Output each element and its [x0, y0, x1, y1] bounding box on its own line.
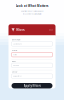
- staticText: Apply filters: [23, 84, 40, 87]
- staticText: Date range: [11, 39, 20, 41]
- staticText: Newest first: [13, 75, 21, 77]
- staticText: Status: [11, 50, 17, 51]
- staticText: Look at What Matters: [16, 4, 48, 8]
- button[interactable]: Newest first: [11, 74, 52, 78]
- staticText: Reset: [48, 29, 52, 31]
- staticText: Apply filters to narrow the view and: [20, 10, 43, 12]
- staticText: Owner: [11, 60, 16, 62]
- staticText: Sort by: [11, 71, 17, 73]
- staticText: focus on the results that matter.: [23, 13, 41, 15]
- button[interactable]: Last 30 days: [11, 42, 52, 46]
- staticText: Last 30 days: [13, 43, 22, 45]
- button[interactable]: Active: [11, 52, 52, 57]
- button[interactable]: Anyone: [11, 63, 52, 68]
- button[interactable]: Reset: [48, 29, 52, 31]
- button[interactable]: Apply filters: [11, 83, 52, 88]
- staticText: Active: [13, 54, 17, 55]
- staticText: Filters: [16, 28, 24, 32]
- staticText: Anyone: [13, 64, 19, 66]
